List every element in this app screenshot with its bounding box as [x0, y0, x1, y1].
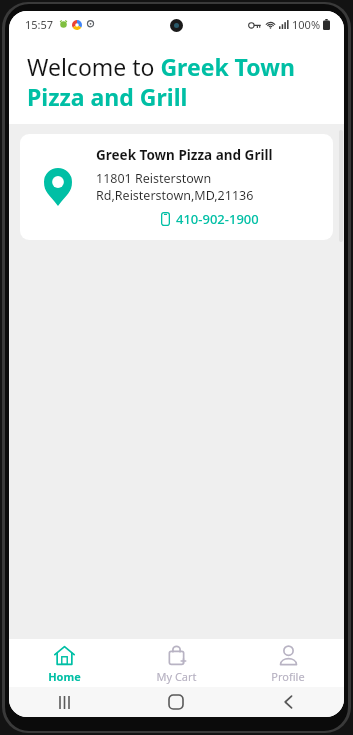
button[interactable]: Profile	[232, 639, 344, 687]
button[interactable]: My Cart	[120, 639, 232, 687]
button[interactable]: Home	[9, 639, 120, 687]
other: Home button	[169, 695, 183, 709]
staticText: Home	[48, 669, 81, 684]
staticText: 410-902-1900	[176, 210, 259, 228]
staticText: 100%	[292, 17, 321, 32]
staticText: Profile	[271, 669, 305, 684]
staticText: Greek Town Pizza and Grill	[96, 146, 273, 164]
other: Profile	[278, 645, 299, 666]
other: Home	[54, 645, 75, 666]
staticText: My Cart	[156, 669, 197, 684]
other: My Cart	[166, 645, 187, 666]
other: Back	[283, 695, 294, 709]
staticText: 15:57	[25, 17, 54, 32]
staticText: 11801 Reisterstown Rd,Reisterstown,MD,21…	[96, 170, 254, 203]
button[interactable]: 410-902-1900	[161, 210, 259, 228]
other: Recents	[57, 696, 72, 709]
staticText: Welcome to Greek Town Pizza and Grill	[27, 51, 330, 113]
button[interactable]: Greek Town Pizza and Grill	[20, 134, 333, 240]
